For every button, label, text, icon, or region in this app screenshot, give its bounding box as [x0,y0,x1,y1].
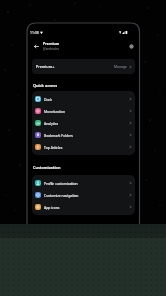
staticText: Quick access [33,83,58,88]
button[interactable]: Top Articles [32,141,135,153]
staticText: Analytics [44,121,59,126]
button[interactable]: Bookmark Folders [32,129,135,141]
staticText: Manage [114,64,127,69]
staticText: Premium [43,41,60,46]
staticText: @androdev [43,47,60,51]
staticText: Top Articles [44,145,63,150]
staticText: Premium+ [36,64,55,69]
button[interactable]: Monetization [32,105,135,117]
button[interactable]: Dock [32,93,135,105]
button[interactable]: Customize navigation [32,189,135,201]
button[interactable]: Premium+ [32,59,135,74]
staticText: 11:08 [30,30,39,35]
button[interactable]: Settings [126,41,136,51]
staticText: Dock [44,97,52,102]
button[interactable]: Back [31,41,41,51]
button[interactable]: Profile customization [32,177,135,189]
staticText: Customization [33,165,61,170]
staticText: App icons [44,205,60,210]
staticText: Monetization [44,109,65,114]
button[interactable]: Analytics [32,117,135,129]
staticText: Bookmark Folders [44,133,73,138]
button[interactable]: App icons [32,201,135,213]
staticText: Profile customization [44,181,78,186]
staticText: Customize navigation [44,193,79,198]
